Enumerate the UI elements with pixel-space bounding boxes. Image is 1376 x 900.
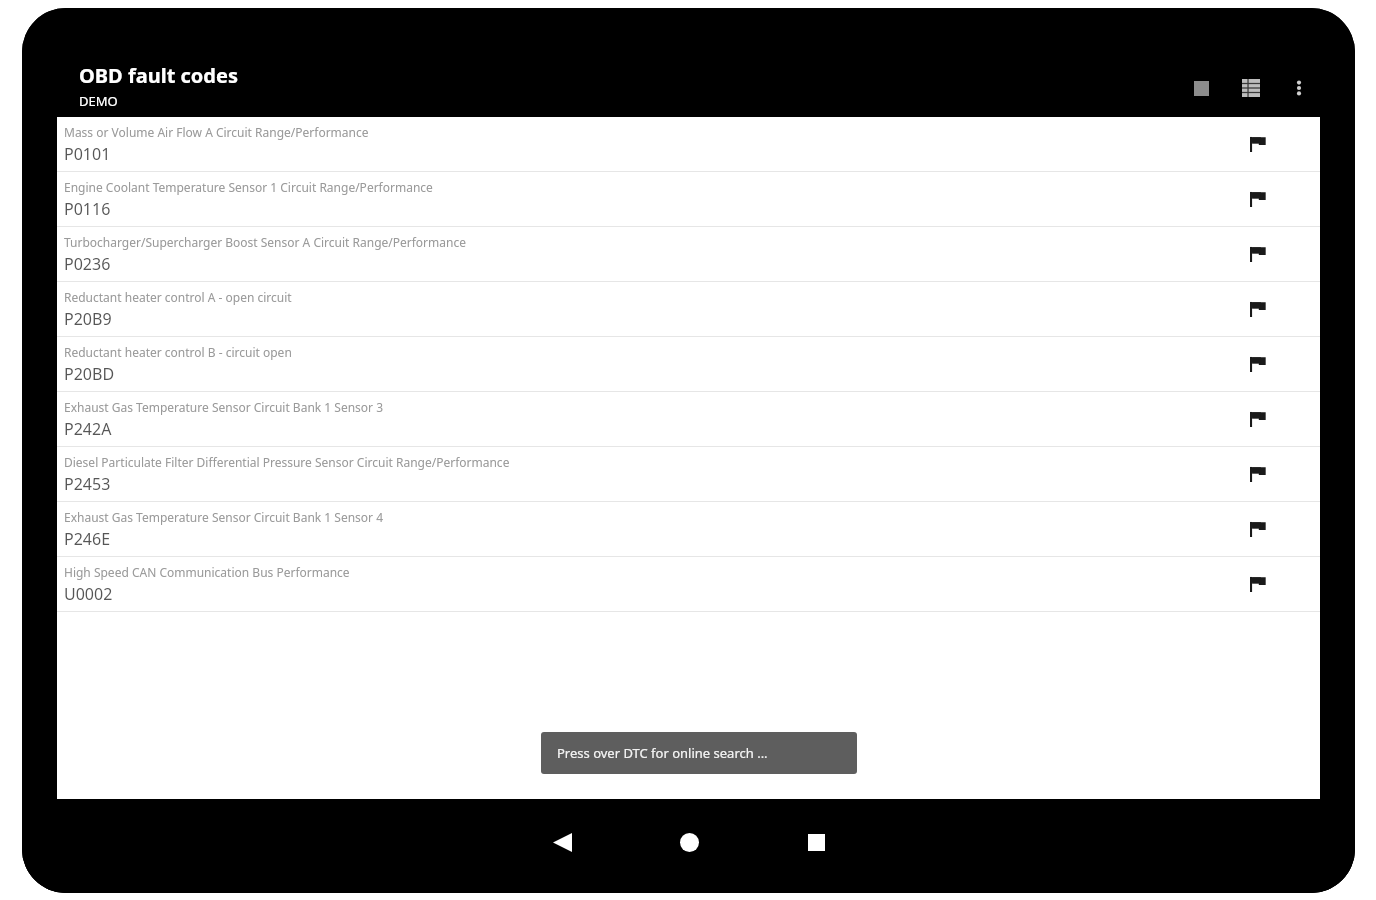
button[interactable]: Flag code — [1244, 515, 1272, 543]
button[interactable]: Flag code — [1244, 130, 1272, 158]
button[interactable]: Home — [661, 814, 717, 870]
button[interactable]: Flag code — [1244, 240, 1272, 268]
staticText: U0002 — [64, 583, 113, 605]
button[interactable]: More options — [1281, 70, 1317, 106]
button[interactable]: Reductant heater control B - circuit ope… — [57, 337, 1320, 391]
button[interactable]: High Speed CAN Communication Bus Perform… — [57, 557, 1320, 611]
staticText: P20BD — [64, 363, 115, 385]
staticText: Press over DTC for online search ... — [557, 744, 768, 762]
staticText: P2453 — [64, 473, 111, 495]
staticText: Exhaust Gas Temperature Sensor Circuit B… — [64, 399, 384, 415]
staticText: DEMO — [79, 92, 118, 110]
button[interactable]: Flag code — [1244, 185, 1272, 213]
button[interactable]: Flag code — [1244, 570, 1272, 598]
button[interactable]: Flag code — [1244, 350, 1272, 378]
staticText: P20B9 — [64, 308, 112, 330]
staticText: Exhaust Gas Temperature Sensor Circuit B… — [64, 509, 384, 525]
staticText: P0116 — [64, 198, 111, 220]
button[interactable]: Back — [534, 814, 590, 870]
button[interactable]: Reductant heater control A - open circui… — [57, 282, 1320, 336]
staticText: Turbocharger/Supercharger Boost Sensor A… — [64, 234, 466, 250]
button[interactable]: List view — [1233, 70, 1269, 106]
staticText: High Speed CAN Communication Bus Perform… — [64, 564, 350, 580]
staticText: Reductant heater control B - circuit ope… — [64, 344, 292, 360]
button[interactable]: Engine Coolant Temperature Sensor 1 Circ… — [57, 172, 1320, 226]
button[interactable]: Stop scan — [1183, 70, 1219, 106]
button[interactable]: Exhaust Gas Temperature Sensor Circuit B… — [57, 392, 1320, 446]
button[interactable]: Flag code — [1244, 460, 1272, 488]
button[interactable]: Exhaust Gas Temperature Sensor Circuit B… — [57, 502, 1320, 556]
staticText: P246E — [64, 528, 111, 550]
staticText: P0101 — [64, 143, 111, 165]
button[interactable]: Flag code — [1244, 295, 1272, 323]
staticText: Reductant heater control A - open circui… — [64, 289, 292, 305]
staticText: Engine Coolant Temperature Sensor 1 Circ… — [64, 179, 433, 195]
staticText: P0236 — [64, 253, 111, 275]
staticText: Mass or Volume Air Flow A Circuit Range/… — [64, 124, 369, 140]
button[interactable]: Recent apps — [788, 814, 844, 870]
button[interactable]: Flag code — [1244, 405, 1272, 433]
staticText: P242A — [64, 418, 112, 440]
button[interactable]: Turbocharger/Supercharger Boost Sensor A… — [57, 227, 1320, 281]
staticText: Diesel Particulate Filter Differential P… — [64, 454, 510, 470]
staticText: OBD fault codes — [79, 62, 238, 89]
button[interactable]: Diesel Particulate Filter Differential P… — [57, 447, 1320, 501]
button[interactable]: Mass or Volume Air Flow A Circuit Range/… — [57, 117, 1320, 171]
